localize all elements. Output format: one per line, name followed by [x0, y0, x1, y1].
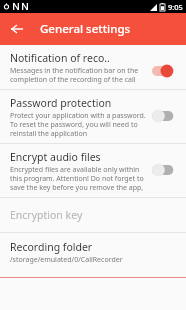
- button[interactable]: Recording folder: [0, 233, 186, 271]
- staticText: 9:05: [168, 2, 183, 12]
- button[interactable]: Toggle off: [152, 162, 178, 178]
- button[interactable]: Toggle on: [152, 63, 178, 79]
- staticText: Notification of reco..: [10, 51, 110, 65]
- staticText: Encryption key: [10, 208, 83, 222]
- button[interactable]: Toggle off: [152, 108, 178, 124]
- staticText: /storage/emulated/0/CallRecorder: [10, 255, 123, 265]
- staticText: Recording folder: [10, 240, 93, 254]
- staticText: Encrypted files are available only withi…: [10, 165, 146, 192]
- button[interactable]: Back: [6, 18, 28, 40]
- button[interactable]: Notification of reco..: [0, 45, 186, 89]
- button[interactable]: Password protection: [0, 90, 186, 143]
- staticText: Encrypt audio files: [10, 150, 101, 164]
- staticText: General settings: [40, 21, 131, 37]
- staticText: Messages in the notification bar on the …: [10, 66, 146, 84]
- staticText: Protect your application with a password…: [10, 111, 146, 138]
- button[interactable]: Encrypt audio files: [0, 144, 186, 197]
- button[interactable]: Encryption key: [0, 198, 186, 232]
- staticText: Password protection: [10, 96, 112, 110]
